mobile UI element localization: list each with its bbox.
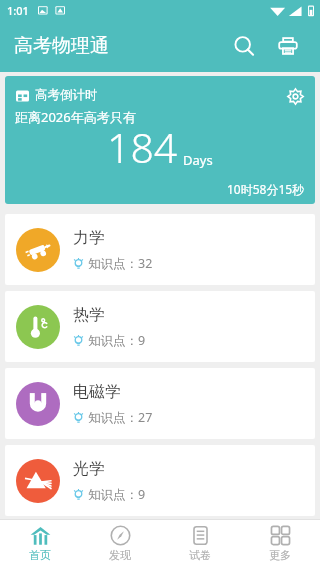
button[interactable]: 发现 [80, 519, 160, 568]
staticText: 知识点：27 [88, 409, 153, 426]
button[interactable]: Settings [282, 83, 308, 109]
staticText: 首页 [29, 548, 51, 562]
staticText: 知识点：9 [88, 332, 146, 349]
button[interactable]: 力学 [5, 214, 315, 285]
button[interactable]: 首页 [0, 519, 80, 568]
staticText: 184 [107, 119, 178, 175]
button[interactable]: 光学 [5, 445, 315, 516]
button[interactable]: 高考倒计时 [5, 76, 315, 204]
button[interactable]: 电磁学 [5, 368, 315, 439]
button[interactable]: Search [222, 24, 266, 68]
button[interactable]: 试卷 [160, 519, 240, 568]
staticText: 力学 [73, 228, 105, 248]
button[interactable]: 热学 [5, 291, 315, 362]
staticText: 知识点：9 [88, 486, 146, 503]
staticText: 更多 [269, 548, 291, 562]
staticText: 试卷 [189, 548, 211, 562]
staticText: 电磁学 [73, 382, 121, 402]
staticText: 高考倒计时 [35, 87, 98, 103]
staticText: 知识点：32 [88, 255, 153, 272]
button[interactable]: Print [266, 24, 310, 68]
staticText: 热学 [73, 305, 105, 325]
staticText: 1:01 [7, 3, 29, 18]
staticText: 光学 [73, 459, 105, 479]
staticText: 10时58分15秒 [227, 181, 305, 197]
staticText: 发现 [109, 548, 131, 562]
staticText: 距离2026年高考只有 [15, 108, 136, 126]
button[interactable]: 更多 [240, 519, 320, 568]
staticText: Days [183, 151, 213, 169]
staticText: 高考物理通 [14, 34, 109, 58]
